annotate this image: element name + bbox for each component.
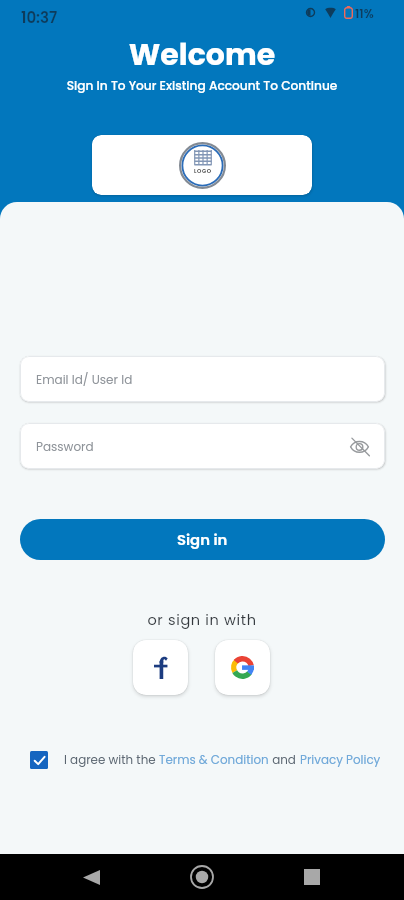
staticText: or sign in with	[0, 610, 404, 630]
button[interactable]: Show password	[347, 434, 371, 458]
button[interactable]: Sign in with Facebook	[133, 640, 188, 695]
staticText: I agree with the	[64, 752, 159, 769]
button[interactable]: Email Id/ User Id	[20, 356, 385, 402]
staticText: Sign in	[177, 529, 228, 550]
button[interactable]: Terms & Condition	[159, 752, 269, 769]
staticText: and	[269, 752, 300, 769]
staticText: Password	[36, 438, 94, 455]
staticText: Welcome	[0, 34, 404, 76]
staticText: Email Id/ User Id	[36, 371, 133, 388]
button[interactable]: Home	[182, 857, 222, 897]
button[interactable]: Sign in with Google	[215, 640, 270, 695]
button[interactable]: Company logo	[92, 135, 312, 195]
button[interactable]: Recents	[292, 857, 332, 897]
staticText: 11%	[355, 5, 374, 22]
button[interactable]: Back	[71, 857, 111, 897]
staticText: 10:37	[21, 7, 58, 28]
button[interactable]: Sign in	[20, 519, 385, 560]
button[interactable]: Password	[20, 423, 385, 469]
button[interactable]: Privacy Policy	[300, 752, 381, 769]
button[interactable]: I agree checkbox	[30, 751, 48, 769]
staticText: Sign In To Your Existing Account To Cont…	[0, 77, 404, 94]
staticText: LOGO	[194, 167, 212, 175]
